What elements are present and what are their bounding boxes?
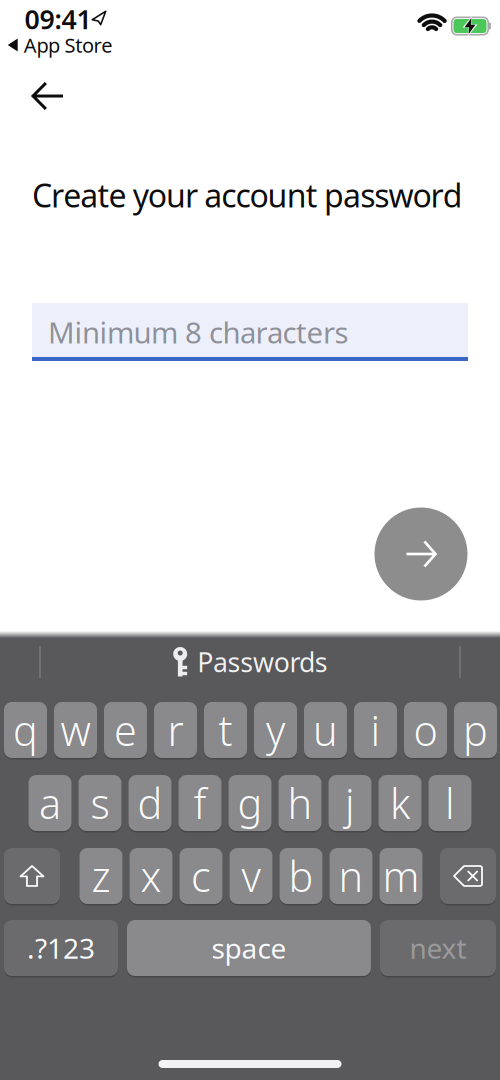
button[interactable]: o: [404, 702, 447, 758]
button[interactable]: x: [129, 848, 172, 904]
staticText: j: [345, 776, 355, 830]
button[interactable]: c: [179, 848, 222, 904]
staticText: .?123: [27, 929, 95, 967]
button[interactable]: h: [278, 775, 321, 831]
staticText: h: [287, 776, 312, 830]
button[interactable]: .?123: [4, 920, 118, 976]
button[interactable]: Shift: [4, 848, 60, 904]
button[interactable]: Minimum 8 characters: [32, 303, 468, 361]
staticText: i: [370, 703, 380, 757]
button[interactable]: next: [380, 920, 496, 976]
button[interactable]: u: [304, 702, 347, 758]
staticText: m: [382, 849, 419, 903]
button[interactable]: i: [354, 702, 397, 758]
button[interactable]: p: [454, 702, 497, 758]
button[interactable]: m: [379, 848, 422, 904]
button[interactable]: f: [178, 775, 221, 831]
button[interactable]: e: [104, 702, 147, 758]
button[interactable]: a: [28, 775, 71, 831]
button[interactable]: s: [78, 775, 121, 831]
staticText: g: [237, 776, 262, 830]
button[interactable]: w: [54, 702, 97, 758]
staticText: v: [241, 849, 260, 903]
staticText: u: [313, 703, 338, 757]
button[interactable]: Back: [25, 75, 71, 117]
staticText: y: [266, 703, 285, 757]
staticText: b: [288, 849, 313, 903]
staticText: next: [409, 929, 466, 967]
button[interactable]: space: [127, 920, 371, 976]
staticText: 09:41: [24, 1, 91, 37]
staticText: t: [218, 703, 232, 757]
button[interactable]: b: [279, 848, 322, 904]
staticText: d: [137, 776, 162, 830]
staticText: r: [167, 703, 183, 757]
button[interactable]: y: [254, 702, 297, 758]
staticText: a: [39, 776, 61, 830]
button[interactable]: v: [229, 848, 272, 904]
button[interactable]: g: [228, 775, 271, 831]
staticText: Minimum 8 characters: [48, 312, 348, 351]
staticText: l: [445, 776, 455, 830]
staticText: z: [91, 849, 110, 903]
button[interactable]: Delete: [440, 848, 496, 904]
staticText: p: [463, 703, 488, 757]
staticText: o: [413, 703, 437, 757]
button[interactable]: k: [378, 775, 421, 831]
button[interactable]: q: [4, 702, 47, 758]
button[interactable]: Next: [374, 507, 467, 600]
button[interactable]: l: [428, 775, 471, 831]
button[interactable]: Back to App Store: [4, 32, 116, 58]
button[interactable]: t: [204, 702, 247, 758]
staticText: w: [60, 703, 90, 757]
staticText: space: [211, 929, 286, 967]
button[interactable]: Passwords: [158, 638, 342, 686]
staticText: c: [191, 849, 211, 903]
staticText: Passwords: [197, 644, 328, 680]
staticText: App Store: [24, 32, 112, 58]
staticText: x: [140, 849, 161, 903]
staticText: e: [114, 703, 137, 757]
staticText: f: [193, 776, 206, 830]
staticText: k: [390, 776, 410, 830]
staticText: n: [338, 849, 363, 903]
button[interactable]: j: [328, 775, 371, 831]
staticText: q: [13, 703, 38, 757]
button[interactable]: r: [154, 702, 197, 758]
staticText: Create your account password: [32, 174, 463, 216]
button[interactable]: z: [79, 848, 122, 904]
staticText: s: [90, 776, 109, 830]
button[interactable]: n: [329, 848, 372, 904]
button[interactable]: d: [128, 775, 171, 831]
